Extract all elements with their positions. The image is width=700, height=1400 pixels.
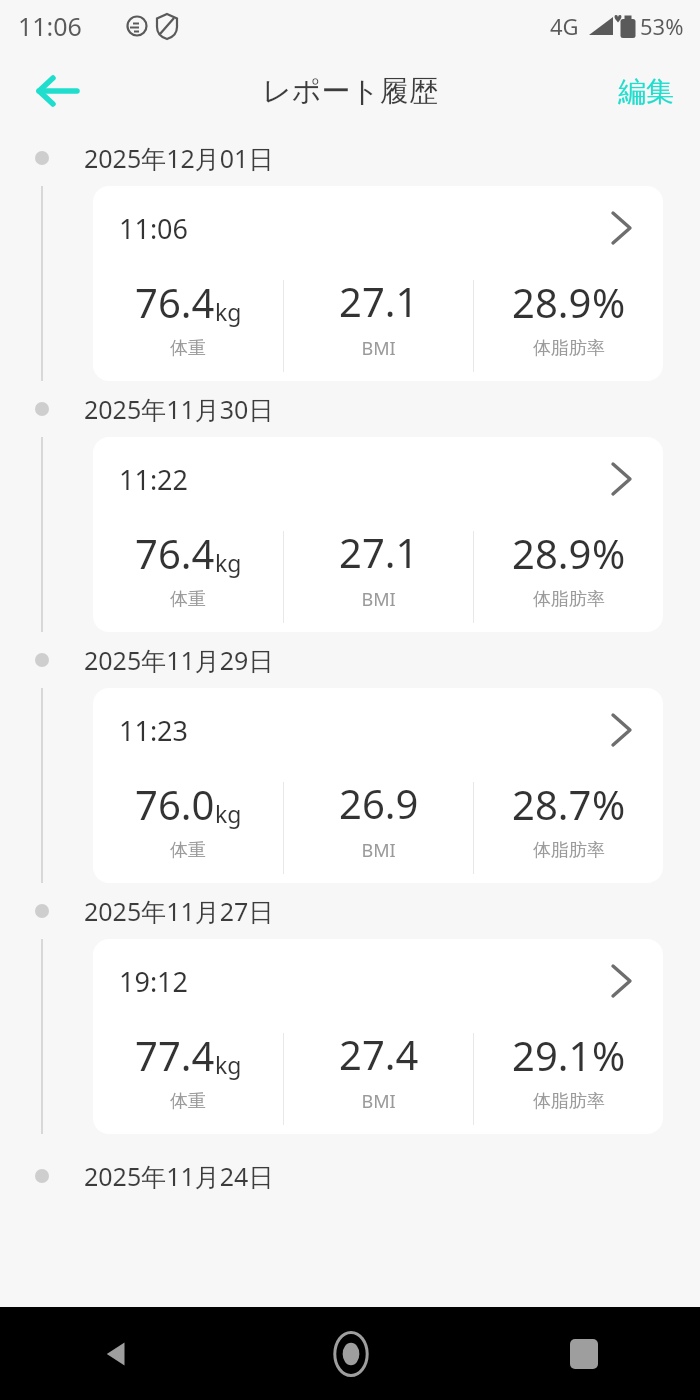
staticText: 11:23 xyxy=(119,712,189,749)
button[interactable]: Recent apps xyxy=(467,1307,700,1400)
staticText: 4G xyxy=(550,11,579,41)
staticText: 27.1 xyxy=(339,525,419,579)
staticText: 編集 xyxy=(618,74,674,109)
staticText: 体重 xyxy=(170,1090,206,1113)
staticText: 29.1 xyxy=(512,1028,592,1082)
staticText: 28.9 xyxy=(512,275,592,329)
staticText: BMI xyxy=(361,587,396,612)
button[interactable]: 編集 xyxy=(606,64,686,119)
staticText: 11:06 xyxy=(119,210,189,247)
staticText: BMI xyxy=(361,838,396,863)
staticText: 28.9 xyxy=(512,526,592,580)
button[interactable]: 19:12 xyxy=(93,939,663,1134)
staticText: 体脂肪率 xyxy=(533,1090,605,1113)
staticText: 26.9 xyxy=(339,776,419,830)
staticText: 11:22 xyxy=(119,461,189,498)
staticText: % xyxy=(592,777,626,831)
staticText: % xyxy=(592,526,626,580)
staticText: 2025年11月30日 xyxy=(84,392,274,426)
staticText: 2025年11月24日 xyxy=(84,1159,274,1193)
staticText: 体重 xyxy=(170,337,206,360)
button[interactable]: Back xyxy=(0,1307,234,1400)
staticText: kg xyxy=(215,1049,242,1080)
button[interactable]: Back xyxy=(20,58,96,124)
staticText: kg xyxy=(215,798,242,829)
staticText: 体脂肪率 xyxy=(533,839,605,862)
staticText: 76.0 xyxy=(135,777,215,831)
staticText: 体脂肪率 xyxy=(533,588,605,611)
staticText: 27.4 xyxy=(339,1027,419,1081)
staticText: 76.4 xyxy=(135,275,215,329)
staticText: % xyxy=(592,1028,626,1082)
staticText: 19:12 xyxy=(119,963,189,1000)
staticText: kg xyxy=(215,547,242,578)
button[interactable]: 11:23 xyxy=(93,688,663,883)
button[interactable]: 11:22 xyxy=(93,437,663,632)
staticText: kg xyxy=(215,296,242,327)
staticText: 76.4 xyxy=(135,526,215,580)
staticText: 27.1 xyxy=(339,274,419,328)
staticText: BMI xyxy=(361,336,396,361)
button[interactable]: Home xyxy=(234,1307,467,1400)
staticText: レポート履歴 xyxy=(262,73,439,110)
staticText: 28.7 xyxy=(512,777,592,831)
staticText: BMI xyxy=(361,1089,396,1114)
staticText: 体重 xyxy=(170,588,206,611)
staticText: 77.4 xyxy=(135,1028,215,1082)
staticText: 2025年11月27日 xyxy=(84,894,274,928)
staticText: % xyxy=(592,275,626,329)
staticText: 2025年11月29日 xyxy=(84,643,274,677)
staticText: 2025年12月01日 xyxy=(84,141,274,175)
staticText: 53% xyxy=(640,11,684,41)
staticText: 11:06 xyxy=(18,9,82,43)
staticText: 体重 xyxy=(170,839,206,862)
staticText: 体脂肪率 xyxy=(533,337,605,360)
button[interactable]: 11:06 xyxy=(93,186,663,381)
